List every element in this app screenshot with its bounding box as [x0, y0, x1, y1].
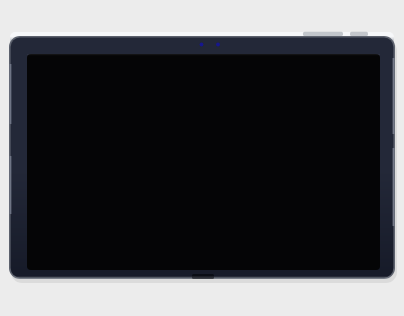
- button[interactable]: Tablet device mockup with blank screen: [0, 0, 404, 316]
